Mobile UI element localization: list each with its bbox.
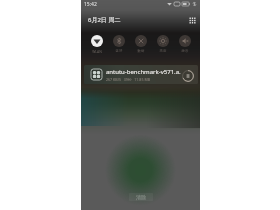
button[interactable]: 亮度 xyxy=(152,35,174,53)
button[interactable]: 数据 xyxy=(130,35,152,53)
staticText: 6月2日 周二 xyxy=(88,16,121,24)
button[interactable]: 清除 xyxy=(129,193,153,201)
staticText: 267 KB/S 39秒 11.85 MB xyxy=(106,77,150,82)
staticText: antutu-benchmark-v571.a... xyxy=(106,68,181,76)
button[interactable]: 蓝牙 xyxy=(108,35,130,53)
staticText: 数据 xyxy=(130,49,152,53)
button[interactable]: antutu-benchmark-v571.a... xyxy=(84,65,198,84)
staticText: 静音 xyxy=(174,49,196,53)
staticText: 15:42 xyxy=(84,1,97,8)
staticText: 亮度 xyxy=(152,49,174,53)
staticText: 清除 xyxy=(136,194,146,200)
button[interactable]: WLAN xyxy=(86,35,108,54)
button[interactable]: Pause download xyxy=(181,69,195,83)
button[interactable]: All settings xyxy=(186,14,198,26)
staticText: 蓝牙 xyxy=(108,49,130,53)
staticText: WLAN xyxy=(86,49,108,54)
button[interactable]: 静音 xyxy=(174,35,196,53)
